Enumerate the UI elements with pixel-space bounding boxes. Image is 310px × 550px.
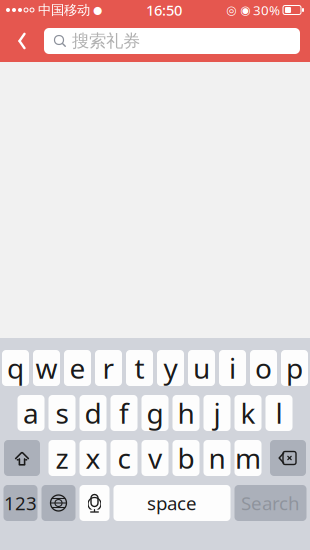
staticText: a bbox=[23, 394, 39, 432]
staticText: 123 bbox=[4, 491, 37, 515]
button[interactable]: z bbox=[48, 440, 75, 476]
staticText: d bbox=[84, 394, 101, 432]
staticText: c bbox=[117, 439, 130, 477]
button[interactable]: n bbox=[203, 440, 230, 476]
staticText: 中国移动 bbox=[38, 2, 90, 18]
button[interactable]: y bbox=[157, 350, 184, 386]
button[interactable]: b bbox=[172, 440, 199, 476]
button[interactable]: m bbox=[234, 440, 261, 476]
button[interactable]: w bbox=[33, 350, 60, 386]
button[interactable]: s bbox=[48, 395, 75, 431]
staticText: ● bbox=[93, 4, 102, 16]
staticText: b bbox=[177, 439, 194, 477]
staticText: t bbox=[134, 349, 144, 387]
staticText: o bbox=[255, 349, 272, 387]
button[interactable]: 搜索礼券 bbox=[44, 28, 300, 54]
button[interactable]: Dictate bbox=[79, 485, 109, 521]
button[interactable]: Back bbox=[0, 20, 44, 62]
button[interactable]: a bbox=[17, 395, 44, 431]
button[interactable]: k bbox=[234, 395, 261, 431]
staticText: ◎ bbox=[226, 3, 236, 17]
staticText: l bbox=[275, 394, 282, 432]
button[interactable]: Delete bbox=[270, 440, 306, 476]
button[interactable]: u bbox=[188, 350, 215, 386]
button[interactable]: p bbox=[281, 350, 308, 386]
button[interactable]: f bbox=[110, 395, 137, 431]
button[interactable]: v bbox=[141, 440, 168, 476]
staticText: n bbox=[208, 439, 225, 477]
staticText: p bbox=[286, 349, 303, 387]
button[interactable]: t bbox=[126, 350, 153, 386]
staticText: 30% bbox=[253, 1, 280, 19]
staticText: h bbox=[177, 394, 194, 432]
staticText: u bbox=[193, 349, 210, 387]
button[interactable]: o bbox=[250, 350, 277, 386]
button[interactable]: d bbox=[79, 395, 106, 431]
staticText: f bbox=[119, 394, 129, 432]
staticText: 16:50 bbox=[146, 0, 182, 20]
button[interactable]: 123 bbox=[3, 485, 37, 521]
button[interactable]: j bbox=[203, 395, 230, 431]
staticText: j bbox=[213, 394, 220, 432]
staticText: ◉ bbox=[240, 3, 250, 17]
button[interactable]: g bbox=[141, 395, 168, 431]
button[interactable]: r bbox=[95, 350, 122, 386]
staticText: w bbox=[35, 349, 57, 387]
staticText: i bbox=[229, 349, 236, 387]
button[interactable]: space bbox=[113, 485, 230, 521]
button[interactable]: e bbox=[64, 350, 91, 386]
button[interactable]: Search bbox=[234, 485, 306, 521]
button[interactable]: q bbox=[2, 350, 29, 386]
staticText: g bbox=[146, 394, 163, 432]
button[interactable]: x bbox=[79, 440, 106, 476]
button[interactable]: c bbox=[110, 440, 137, 476]
button[interactable]: l bbox=[265, 395, 292, 431]
staticText: s bbox=[55, 394, 68, 432]
staticText: r bbox=[102, 349, 114, 387]
staticText: y bbox=[163, 349, 177, 387]
staticText: 搜索礼券 bbox=[72, 30, 140, 52]
staticText: z bbox=[55, 439, 68, 477]
staticText: v bbox=[148, 439, 162, 477]
staticText: x bbox=[85, 439, 100, 477]
staticText: k bbox=[240, 394, 255, 432]
button[interactable]: Shift bbox=[4, 440, 40, 476]
staticText: m bbox=[235, 439, 261, 477]
button[interactable]: i bbox=[219, 350, 246, 386]
staticText: Search bbox=[241, 491, 300, 515]
staticText: space bbox=[147, 491, 197, 515]
staticText: q bbox=[7, 349, 24, 387]
button[interactable]: h bbox=[172, 395, 199, 431]
button[interactable]: Next keyboard bbox=[41, 485, 75, 521]
staticText: e bbox=[69, 349, 85, 387]
